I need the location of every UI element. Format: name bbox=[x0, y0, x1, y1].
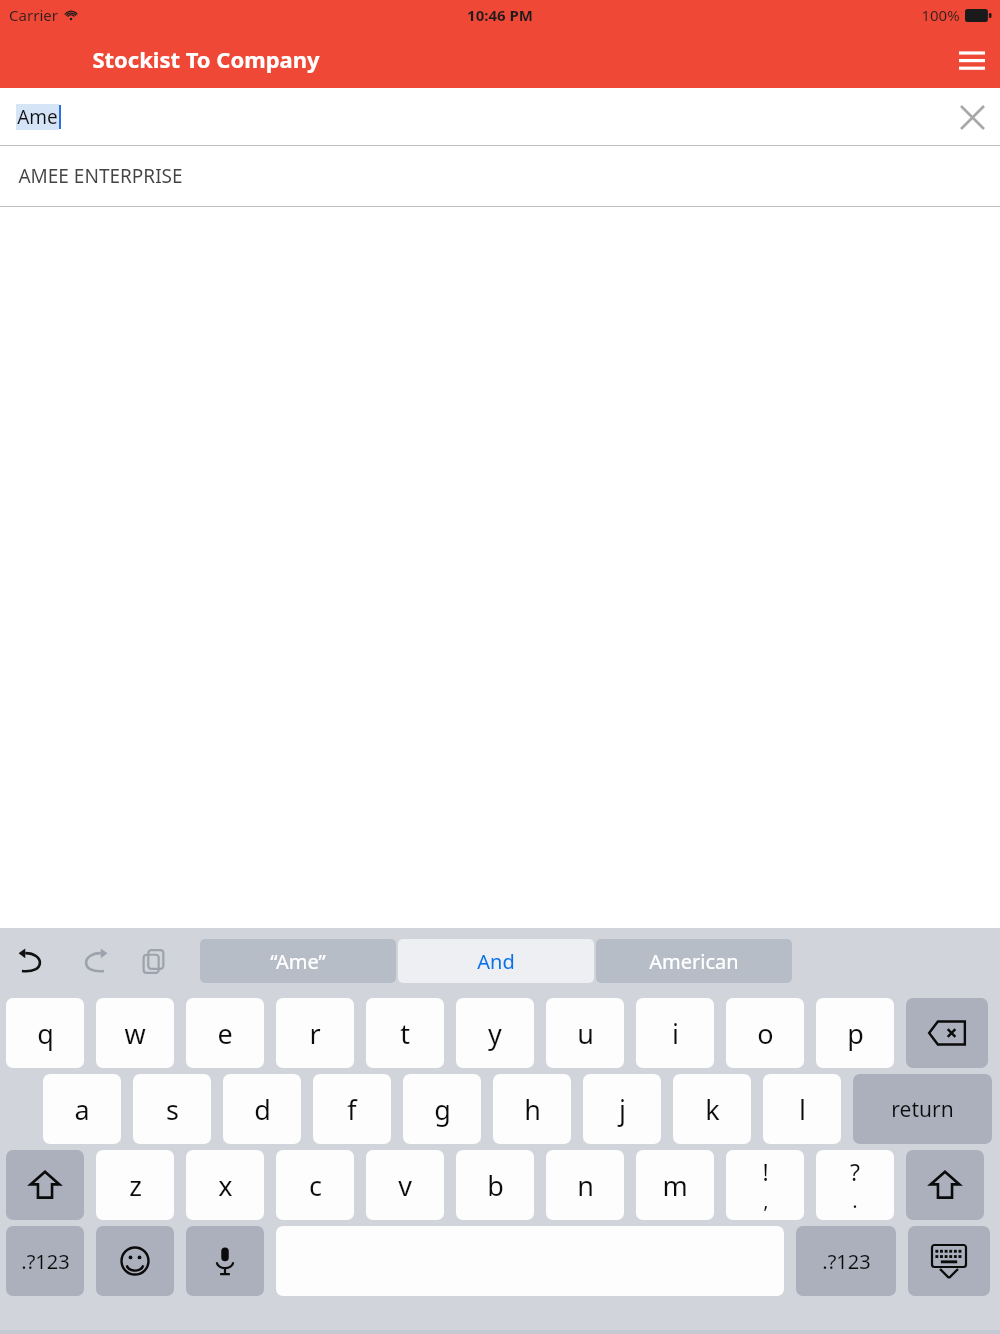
button[interactable]: Redo bbox=[76, 943, 112, 979]
staticText: Ame bbox=[17, 104, 58, 130]
button[interactable]: j bbox=[583, 1074, 661, 1144]
staticText: , bbox=[763, 1187, 769, 1214]
staticText: a bbox=[74, 1091, 90, 1128]
button[interactable]: Backspace bbox=[906, 998, 988, 1068]
button[interactable]: l bbox=[763, 1074, 841, 1144]
button[interactable]: z bbox=[96, 1150, 174, 1220]
staticText: z bbox=[129, 1167, 142, 1204]
button[interactable]: ? bbox=[816, 1150, 894, 1220]
button[interactable]: y bbox=[456, 998, 534, 1068]
button[interactable]: “Ame” bbox=[200, 939, 396, 983]
button[interactable]: k bbox=[673, 1074, 751, 1144]
staticText: t bbox=[400, 1015, 410, 1052]
button[interactable]: Emoji bbox=[96, 1226, 174, 1296]
button[interactable]: Clear bbox=[944, 89, 1000, 145]
staticText: y bbox=[488, 1015, 502, 1052]
staticText: “Ame” bbox=[270, 948, 326, 975]
staticText: k bbox=[705, 1091, 720, 1128]
button[interactable]: t bbox=[366, 998, 444, 1068]
button[interactable]: p bbox=[816, 998, 894, 1068]
staticText: m bbox=[662, 1167, 688, 1204]
button[interactable]: American bbox=[596, 939, 792, 983]
button[interactable]: c bbox=[276, 1150, 354, 1220]
staticText: b bbox=[487, 1167, 504, 1204]
staticText: g bbox=[434, 1091, 451, 1128]
button[interactable]: e bbox=[186, 998, 264, 1068]
staticText: And bbox=[477, 948, 515, 975]
staticText: n bbox=[577, 1167, 594, 1204]
staticText: v bbox=[398, 1167, 412, 1204]
button[interactable]: f bbox=[313, 1074, 391, 1144]
staticText: 100% bbox=[921, 5, 960, 25]
button[interactable]: .?123 bbox=[6, 1226, 84, 1296]
button[interactable]: q bbox=[6, 998, 84, 1068]
staticText: h bbox=[524, 1091, 541, 1128]
button[interactable]: o bbox=[726, 998, 804, 1068]
staticText: return bbox=[891, 1095, 954, 1124]
staticText: x bbox=[218, 1167, 233, 1204]
button[interactable]: v bbox=[366, 1150, 444, 1220]
staticText: ! bbox=[762, 1156, 769, 1187]
staticText: AMEE ENTERPRISE bbox=[18, 163, 183, 189]
button[interactable]: b bbox=[456, 1150, 534, 1220]
staticText: i bbox=[672, 1015, 679, 1052]
button[interactable]: AMEE ENTERPRISE bbox=[0, 146, 1000, 206]
button[interactable]: w bbox=[96, 998, 174, 1068]
staticText: j bbox=[619, 1091, 626, 1128]
button[interactable]: x bbox=[186, 1150, 264, 1220]
staticText: .?123 bbox=[822, 1248, 871, 1275]
staticText: c bbox=[309, 1167, 322, 1204]
button[interactable]: return bbox=[853, 1074, 992, 1144]
staticText: f bbox=[347, 1091, 357, 1128]
button[interactable]: g bbox=[403, 1074, 481, 1144]
staticText: ? bbox=[850, 1156, 860, 1187]
button[interactable]: n bbox=[546, 1150, 624, 1220]
staticText: American bbox=[649, 948, 739, 975]
button[interactable]: m bbox=[636, 1150, 714, 1220]
button[interactable]: i bbox=[636, 998, 714, 1068]
staticText: Carrier bbox=[9, 5, 58, 25]
staticText: Stockist To Company bbox=[92, 44, 320, 74]
staticText: r bbox=[309, 1015, 321, 1052]
staticText: 10:46 PM bbox=[467, 5, 533, 25]
button[interactable]: u bbox=[546, 998, 624, 1068]
button[interactable]: Menu bbox=[944, 31, 1000, 87]
staticText: d bbox=[254, 1091, 271, 1128]
button[interactable]: r bbox=[276, 998, 354, 1068]
button[interactable]: h bbox=[493, 1074, 571, 1144]
staticText: l bbox=[799, 1091, 806, 1128]
button[interactable]: Paste bbox=[136, 943, 172, 979]
staticText: s bbox=[166, 1091, 179, 1128]
staticText: p bbox=[847, 1015, 864, 1052]
button[interactable]: Shift right bbox=[906, 1150, 984, 1220]
button[interactable]: .?123 bbox=[796, 1226, 896, 1296]
staticText: e bbox=[217, 1015, 233, 1052]
button[interactable]: a bbox=[43, 1074, 121, 1144]
staticText: o bbox=[757, 1015, 774, 1052]
button[interactable]: And bbox=[398, 939, 594, 983]
button[interactable]: Dictate bbox=[186, 1226, 264, 1296]
button[interactable]: Hide keyboard bbox=[908, 1226, 990, 1296]
staticText: q bbox=[37, 1015, 54, 1052]
button[interactable]: s bbox=[133, 1074, 211, 1144]
button[interactable]: Undo bbox=[14, 943, 50, 979]
button[interactable]: d bbox=[223, 1074, 301, 1144]
staticText: .?123 bbox=[21, 1248, 70, 1275]
button[interactable]: ! bbox=[726, 1150, 804, 1220]
staticText: . bbox=[852, 1187, 858, 1214]
staticText: u bbox=[577, 1015, 594, 1052]
staticText: w bbox=[124, 1015, 146, 1052]
button[interactable]: Shift bbox=[6, 1150, 84, 1220]
